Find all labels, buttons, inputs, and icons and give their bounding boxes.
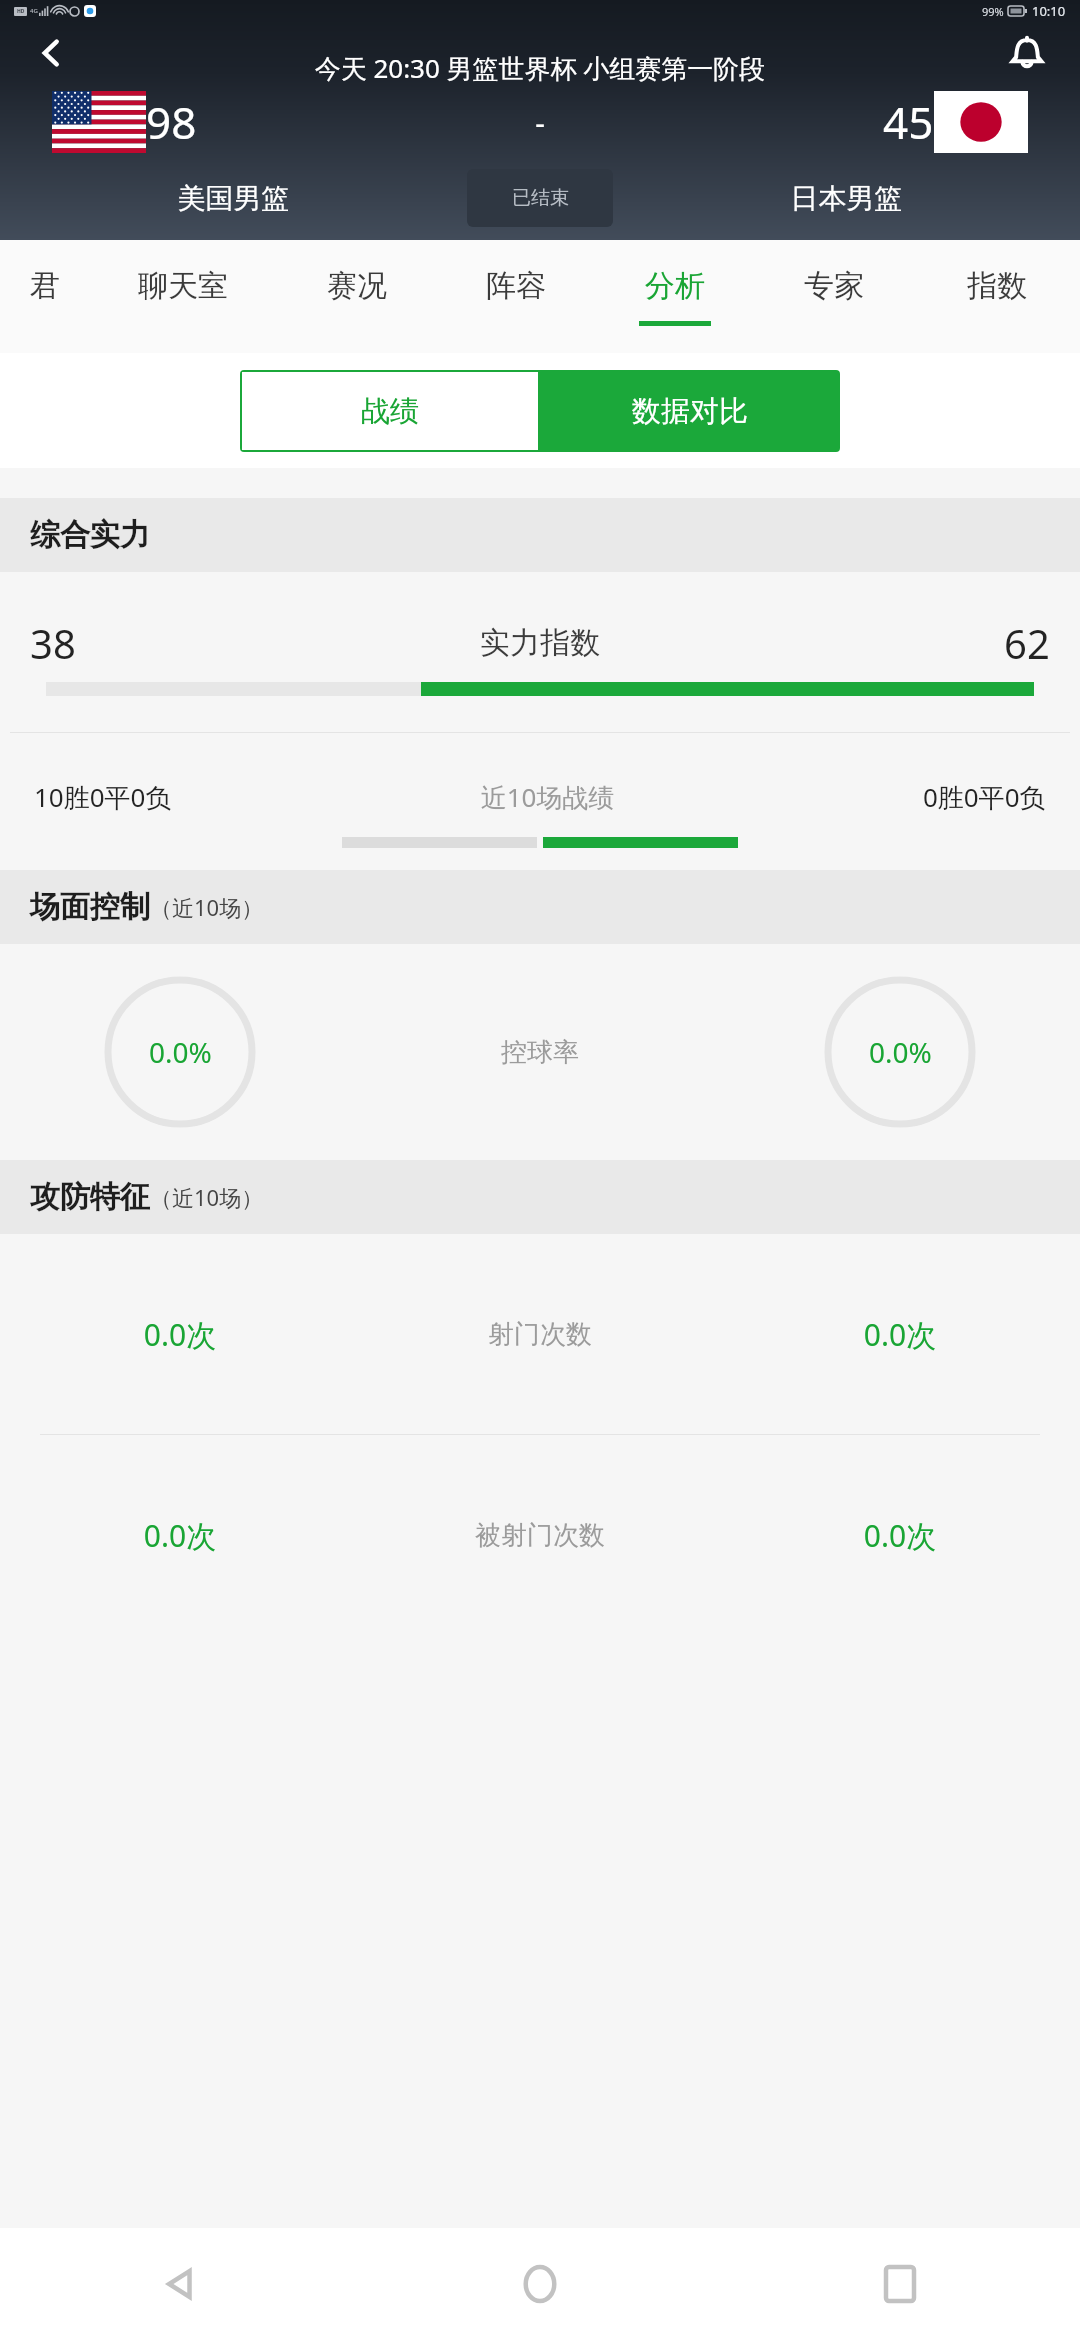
staticText: 被射门次数 — [360, 1519, 720, 1552]
button[interactable]: 聊天室 — [89, 240, 277, 353]
staticText: 0.0次 — [720, 1314, 1080, 1355]
staticText: 专家 — [804, 267, 864, 305]
staticText: 控球率 — [360, 1036, 720, 1069]
button[interactable]: Back — [22, 23, 82, 83]
staticText: 数据对比 — [632, 393, 748, 430]
staticText: - — [262, 102, 818, 143]
staticText: 45 — [883, 92, 934, 152]
staticText: 场面控制 — [30, 888, 150, 926]
staticText: 0.0次 — [720, 1515, 1080, 1556]
button[interactable]: Recent apps — [720, 2228, 1080, 2340]
staticText: 0.0次 — [0, 1314, 360, 1355]
button[interactable]: 赛况 — [277, 240, 436, 353]
staticText: 日本男篮 — [613, 181, 1080, 216]
button[interactable]: Notifications — [996, 22, 1058, 84]
button[interactable]: 战绩 — [242, 372, 538, 450]
button[interactable]: 分析 — [595, 240, 754, 353]
staticText: 阵容 — [486, 267, 546, 305]
button[interactable]: 指数 — [913, 240, 1080, 353]
staticText: 战绩 — [361, 393, 419, 430]
staticText: 4G — [30, 7, 38, 15]
staticText: 近10场战绩 — [172, 779, 923, 815]
staticText: 分析 — [645, 267, 705, 305]
staticText: 已结束 — [512, 186, 569, 210]
staticText: （近10场） — [150, 892, 264, 922]
staticText: 0.0次 — [0, 1515, 360, 1556]
staticText: 今天 20:30 男篮世界杯 小组赛第一阶段 — [0, 50, 1080, 86]
staticText: 0.0% — [869, 1033, 932, 1071]
staticText: 38 — [30, 616, 76, 670]
staticText: 99% — [982, 4, 1004, 19]
staticText: 实力指数 — [76, 624, 1004, 662]
staticText: （近10场） — [150, 1182, 264, 1212]
staticText: 0胜0平0负 — [923, 779, 1046, 815]
button[interactable]: 专家 — [754, 240, 913, 353]
staticText: 聊天室 — [138, 267, 228, 305]
button[interactable]: 阵容 — [436, 240, 595, 353]
staticText: 10:10 — [1032, 2, 1066, 20]
staticText: 射门次数 — [360, 1318, 720, 1351]
staticText: HD — [17, 8, 25, 15]
button[interactable]: Home — [360, 2228, 720, 2340]
staticText: 攻防特征 — [30, 1178, 150, 1216]
staticText: 62 — [1004, 616, 1050, 670]
button[interactable]: 数据对比 — [540, 370, 840, 452]
button[interactable]: 已结束 — [467, 169, 613, 227]
staticText: 10胜0平0负 — [34, 779, 172, 815]
staticText: 综合实力 — [30, 516, 150, 554]
button[interactable]: Back — [0, 2228, 360, 2340]
staticText: 美国男篮 — [0, 181, 467, 216]
staticText: 君 — [30, 267, 60, 305]
staticText: 0.0% — [149, 1033, 212, 1071]
staticText: 指数 — [967, 267, 1027, 305]
staticText: 赛况 — [327, 267, 387, 305]
staticText: 98 — [146, 92, 197, 152]
button[interactable]: 君 — [0, 240, 89, 353]
